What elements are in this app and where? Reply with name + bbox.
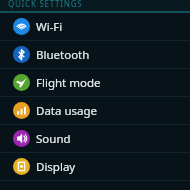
button[interactable]: Wi-Fi — [0, 13, 190, 40]
button[interactable]: Data usage — [0, 97, 190, 124]
staticText: Flight mode — [36, 75, 101, 91]
staticText: Wi-Fi — [36, 19, 63, 35]
button[interactable]: Bluetooth — [0, 41, 190, 68]
button[interactable]: Display — [0, 153, 190, 180]
staticText: Data usage — [36, 103, 98, 119]
staticText: Bluetooth — [36, 47, 90, 63]
staticText: Sound — [36, 131, 71, 147]
button[interactable]: Sound — [0, 125, 190, 152]
staticText: QUICK SETTINGS — [8, 0, 83, 9]
button[interactable]: Flight mode — [0, 69, 190, 96]
staticText: Display — [36, 159, 76, 175]
